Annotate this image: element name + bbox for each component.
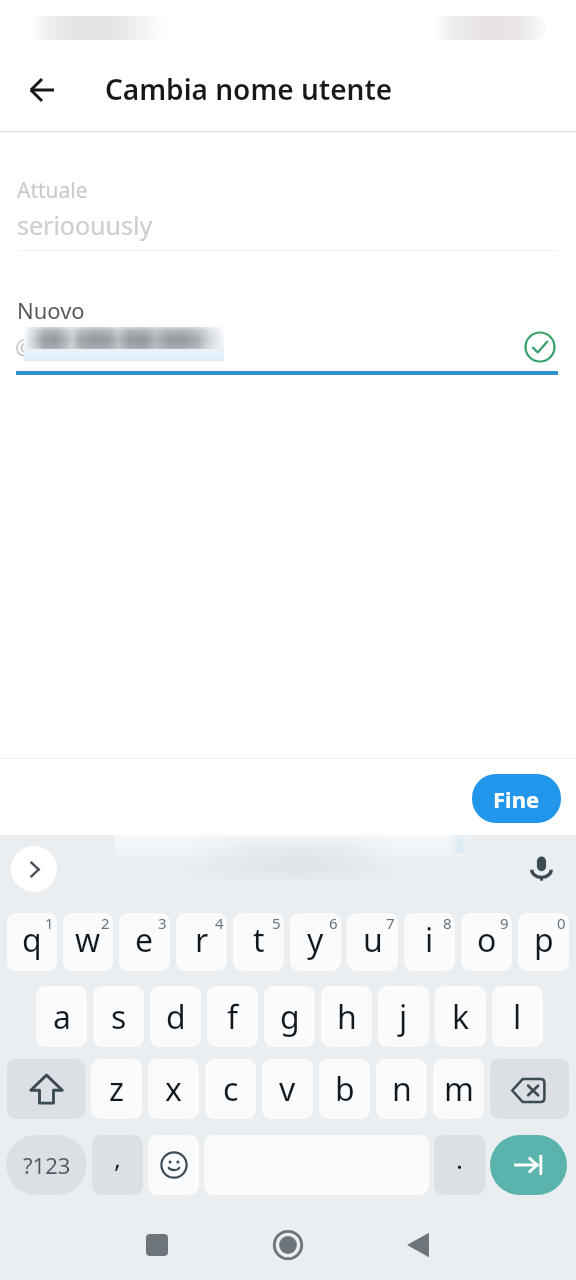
button[interactable]: Expand toolbar bbox=[11, 846, 57, 892]
button[interactable]: d bbox=[150, 986, 201, 1047]
staticText: w bbox=[75, 918, 101, 962]
staticText: e bbox=[135, 918, 154, 962]
staticText: m bbox=[444, 1067, 474, 1111]
staticText: @ bbox=[15, 331, 35, 361]
staticText: ?123 bbox=[23, 1150, 71, 1180]
staticText: 9 bbox=[500, 913, 509, 933]
button[interactable]: x bbox=[148, 1059, 199, 1119]
button[interactable]: Username available bbox=[518, 325, 562, 369]
button[interactable]: Next bbox=[490, 1135, 567, 1195]
staticText: x bbox=[165, 1067, 182, 1111]
staticText: 6 bbox=[329, 913, 338, 933]
button[interactable]: b bbox=[319, 1059, 370, 1119]
staticText: p bbox=[534, 918, 554, 962]
button[interactable]: Voice input bbox=[521, 848, 561, 888]
staticText: 7 bbox=[386, 913, 395, 933]
button[interactable]: Shift bbox=[7, 1059, 85, 1119]
staticText: , bbox=[114, 1140, 121, 1175]
button[interactable]: y bbox=[290, 913, 341, 971]
staticText: n bbox=[392, 1067, 412, 1111]
staticText: 3 bbox=[158, 913, 167, 933]
button[interactable]: h bbox=[321, 986, 372, 1047]
button[interactable]: Back bbox=[14, 62, 70, 118]
staticText: . bbox=[456, 1141, 463, 1176]
button[interactable]: m bbox=[433, 1059, 484, 1119]
button[interactable]: r bbox=[176, 913, 227, 971]
button[interactable]: Back bbox=[386, 1213, 450, 1277]
button[interactable]: Emoji bbox=[148, 1135, 199, 1195]
button[interactable]: v bbox=[262, 1059, 313, 1119]
staticText: serioouusly bbox=[17, 208, 153, 242]
button[interactable]: f bbox=[207, 986, 258, 1047]
staticText: Fine bbox=[493, 784, 540, 814]
staticText: l bbox=[513, 995, 522, 1039]
button[interactable]: . bbox=[434, 1135, 485, 1195]
staticText: t bbox=[253, 918, 265, 962]
button[interactable]: c bbox=[205, 1059, 256, 1119]
staticText: s bbox=[111, 995, 127, 1039]
staticText: v bbox=[279, 1067, 296, 1111]
staticText: i bbox=[425, 918, 434, 962]
button[interactable]: g bbox=[264, 986, 315, 1047]
button[interactable]: u bbox=[347, 913, 398, 971]
button[interactable]: k bbox=[435, 986, 486, 1047]
staticText: r bbox=[195, 918, 209, 962]
staticText: 8 bbox=[443, 913, 452, 933]
staticText: y bbox=[307, 918, 324, 962]
button[interactable]: a bbox=[36, 986, 87, 1047]
staticText: Cambia nome utente bbox=[105, 70, 393, 108]
button[interactable]: i bbox=[404, 913, 455, 971]
button[interactable]: Fine bbox=[472, 774, 561, 823]
staticText: k bbox=[452, 995, 470, 1039]
staticText: j bbox=[399, 995, 408, 1039]
button[interactable]: s bbox=[93, 986, 144, 1047]
button[interactable]: n bbox=[376, 1059, 427, 1119]
button[interactable]: w bbox=[63, 913, 113, 971]
staticText: u bbox=[363, 918, 383, 962]
button[interactable]: o bbox=[461, 913, 512, 971]
staticText: h bbox=[337, 995, 357, 1039]
staticText: q bbox=[22, 918, 42, 962]
staticText: 2 bbox=[101, 913, 110, 933]
staticText: f bbox=[227, 995, 239, 1039]
staticText: g bbox=[280, 995, 300, 1039]
staticText: o bbox=[477, 918, 497, 962]
staticText: c bbox=[223, 1067, 239, 1111]
button[interactable]: Recent apps bbox=[125, 1213, 189, 1277]
button[interactable]: z bbox=[91, 1059, 142, 1119]
button[interactable]: e bbox=[119, 913, 170, 971]
staticText: z bbox=[109, 1067, 125, 1111]
staticText: 0 bbox=[557, 913, 566, 933]
button[interactable]: l bbox=[492, 986, 543, 1047]
staticText: Nuovo bbox=[17, 295, 85, 325]
staticText: 4 bbox=[215, 913, 224, 933]
button[interactable]: q bbox=[7, 913, 57, 971]
staticText: 5 bbox=[272, 913, 281, 933]
staticText: 1 bbox=[45, 913, 54, 933]
button[interactable]: ?123 bbox=[6, 1135, 87, 1195]
button[interactable]: j bbox=[378, 986, 429, 1047]
button[interactable]: t bbox=[233, 913, 284, 971]
button[interactable]: Home bbox=[256, 1213, 320, 1277]
button[interactable]: p bbox=[518, 913, 569, 971]
staticText: b bbox=[335, 1067, 355, 1111]
staticText: d bbox=[166, 995, 186, 1039]
button[interactable]: , bbox=[92, 1135, 143, 1195]
staticText: Attuale bbox=[17, 176, 88, 205]
staticText: a bbox=[53, 995, 71, 1039]
button[interactable]: Backspace bbox=[490, 1059, 569, 1119]
